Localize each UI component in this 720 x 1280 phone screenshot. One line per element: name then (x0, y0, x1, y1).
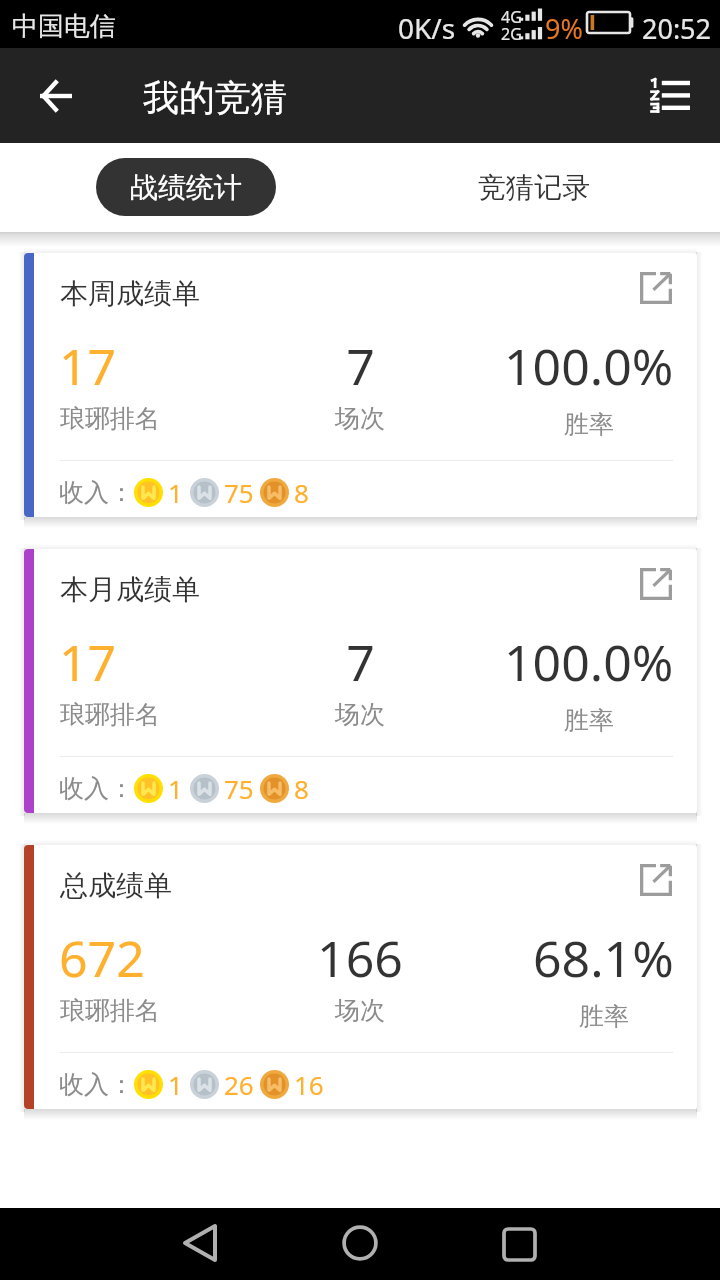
staticText: 7 (346, 332, 375, 400)
staticText: 1 (168, 771, 183, 805)
staticText: 26 (224, 1067, 254, 1101)
staticText: 672 (59, 924, 145, 992)
button[interactable]: Ranking (643, 71, 697, 121)
staticText: 琅琊排名 (60, 403, 160, 434)
button[interactable]: 总成绩单 (24, 845, 697, 1109)
staticText: 75 (224, 771, 254, 805)
staticText: 75 (224, 475, 254, 509)
staticText: 收入： (59, 773, 134, 804)
staticText: 1 (168, 1067, 183, 1101)
button[interactable]: 本月成绩单 (24, 549, 697, 813)
staticText: 场次 (335, 995, 385, 1026)
staticText: 8 (294, 771, 309, 805)
staticText: 竞猜记录 (478, 170, 590, 205)
staticText: 胜率 (564, 409, 614, 440)
staticText: 8 (294, 475, 309, 509)
button[interactable]: 战绩统计 (96, 158, 276, 216)
staticText: 收入： (59, 477, 134, 508)
button[interactable]: Open details (635, 563, 677, 605)
staticText: 战绩统计 (130, 170, 242, 205)
staticText: 2G (501, 23, 522, 45)
button[interactable]: Home (335, 1218, 385, 1268)
button[interactable]: Open details (635, 267, 677, 309)
staticText: 中国电信 (12, 10, 116, 43)
staticText: 0K/s (398, 9, 456, 47)
staticText: 1 (168, 475, 183, 509)
staticText: 场次 (335, 699, 385, 730)
staticText: 本周成绩单 (60, 276, 200, 311)
staticText: 20:52 (642, 10, 712, 47)
staticText: 17 (59, 628, 117, 696)
staticText: 166 (317, 924, 403, 992)
staticText: 16 (294, 1067, 324, 1101)
staticText: 100.0% (504, 332, 674, 400)
staticText: 胜率 (579, 1001, 629, 1032)
button[interactable]: Back (28, 68, 84, 124)
staticText: 7 (346, 628, 375, 696)
staticText: 胜率 (564, 705, 614, 736)
staticText: 4G (501, 6, 522, 28)
button[interactable]: 竞猜记录 (444, 158, 624, 216)
button[interactable]: Open details (635, 859, 677, 901)
button[interactable]: Recents (495, 1219, 545, 1269)
staticText: 琅琊排名 (60, 699, 160, 730)
staticText: 68.1% (533, 924, 674, 992)
button[interactable]: 本周成绩单 (24, 253, 697, 517)
staticText: 我的竞猜 (143, 75, 287, 120)
staticText: 总成绩单 (60, 868, 172, 903)
staticText: 收入： (59, 1069, 134, 1100)
staticText: 场次 (335, 403, 385, 434)
staticText: 琅琊排名 (60, 995, 160, 1026)
staticText: 17 (59, 332, 117, 400)
staticText: 本月成绩单 (60, 572, 200, 607)
staticText: 100.0% (504, 628, 674, 696)
button[interactable]: Back (175, 1217, 225, 1265)
staticText: 9% (545, 10, 583, 47)
